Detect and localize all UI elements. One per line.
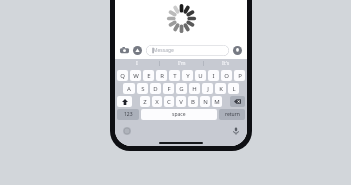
button[interactable]: K xyxy=(215,83,226,94)
staticText: C xyxy=(167,98,171,106)
button[interactable]: O xyxy=(221,70,232,81)
button[interactable]: E xyxy=(143,70,154,81)
staticText: H xyxy=(192,85,197,93)
staticText: U xyxy=(198,72,203,80)
button[interactable]: C xyxy=(164,96,174,107)
button[interactable]: W xyxy=(130,70,141,81)
button[interactable]: G xyxy=(176,83,187,94)
button[interactable]: Dictation xyxy=(230,125,241,136)
button[interactable]: T xyxy=(169,70,180,81)
button[interactable]: Backspace xyxy=(230,96,245,107)
staticText: O xyxy=(224,72,229,80)
staticText: A xyxy=(127,85,131,93)
staticText: I xyxy=(212,72,215,80)
button[interactable]: I xyxy=(208,70,219,81)
button[interactable]: Camera xyxy=(119,45,130,56)
staticText: F xyxy=(167,85,171,93)
button[interactable]: J xyxy=(202,83,213,94)
staticText: Q xyxy=(120,72,125,80)
staticText: X xyxy=(155,98,159,106)
staticText: 123 xyxy=(124,111,133,118)
staticText: J xyxy=(207,85,209,93)
staticText: It's xyxy=(222,60,230,67)
button[interactable]: X xyxy=(152,96,162,107)
staticText: T xyxy=(173,72,177,80)
staticText: I xyxy=(136,60,138,67)
button[interactable]: N xyxy=(200,96,210,107)
staticText: E xyxy=(147,72,151,80)
staticText: Message xyxy=(153,47,174,54)
staticText: D xyxy=(153,85,158,93)
staticText: return xyxy=(225,111,240,118)
button[interactable]: Y xyxy=(182,70,193,81)
staticText: V xyxy=(179,98,183,106)
staticText: S xyxy=(141,85,145,93)
button[interactable]: I'm xyxy=(160,59,203,68)
button[interactable]: 123 xyxy=(117,109,139,120)
button[interactable]: U xyxy=(195,70,206,81)
button[interactable]: space xyxy=(141,109,217,120)
button[interactable]: Message xyxy=(146,45,229,56)
button[interactable]: I xyxy=(115,59,159,68)
staticText: G xyxy=(179,85,184,93)
staticText: Y xyxy=(186,72,190,80)
staticText: I'm xyxy=(178,60,186,67)
button[interactable]: H xyxy=(189,83,200,94)
button[interactable]: F xyxy=(163,83,174,94)
staticText: L xyxy=(232,85,236,93)
staticText: M xyxy=(214,98,220,106)
staticText: P xyxy=(238,72,242,80)
staticText: R xyxy=(160,72,164,80)
button[interactable]: R xyxy=(156,70,167,81)
button[interactable]: V xyxy=(176,96,186,107)
button[interactable]: P xyxy=(234,70,245,81)
button[interactable]: B xyxy=(188,96,198,107)
button[interactable]: Emoji xyxy=(121,125,132,136)
button[interactable]: D xyxy=(150,83,161,94)
staticText: W xyxy=(133,72,139,80)
button[interactable]: S xyxy=(137,83,148,94)
button[interactable]: M xyxy=(212,96,222,107)
staticText: K xyxy=(219,85,223,93)
button[interactable]: A xyxy=(123,83,135,94)
button[interactable]: L xyxy=(228,83,239,94)
staticText: Z xyxy=(143,98,147,106)
button[interactable]: Z xyxy=(140,96,150,107)
button[interactable]: Audio message xyxy=(232,45,243,56)
button[interactable]: return xyxy=(219,109,245,120)
staticText: space xyxy=(172,111,186,118)
button[interactable]: Q xyxy=(117,70,128,81)
staticText: N xyxy=(203,98,208,106)
button[interactable]: It's xyxy=(204,59,247,68)
staticText: B xyxy=(191,98,195,106)
button[interactable]: App Store xyxy=(132,45,143,56)
button[interactable]: Shift xyxy=(117,96,132,107)
